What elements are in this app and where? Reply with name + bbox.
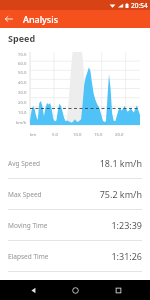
button[interactable]: Home — [65, 280, 85, 300]
staticText: 40.0 — [18, 80, 27, 86]
button[interactable]: Avg Speed — [0, 148, 150, 178]
staticText: 18.1 km/h — [99, 157, 142, 169]
button[interactable]: Recent apps — [108, 280, 128, 300]
button[interactable]: Moving Time — [0, 210, 150, 240]
staticText: Elapsed Time — [8, 252, 49, 261]
staticText: 5.0 — [52, 132, 58, 138]
staticText: 60.0 — [18, 61, 27, 67]
staticText: Max Speed — [8, 190, 42, 199]
button[interactable]: Back — [23, 280, 43, 300]
staticText: 50.0 — [18, 70, 27, 76]
staticText: 30.0 — [18, 90, 27, 96]
staticText: 1:23:39 — [111, 219, 142, 231]
staticText: km/h — [16, 120, 27, 126]
button[interactable]: Back — [0, 10, 18, 28]
staticText: 20.0 — [115, 132, 124, 138]
staticText: 1:31:26 — [111, 250, 142, 262]
staticText: Analysis — [23, 13, 59, 25]
staticText: 20:54 — [131, 1, 148, 10]
staticText: 10.0 — [73, 132, 82, 138]
staticText: 70.0 — [18, 52, 27, 58]
staticText: 75.2 km/h — [99, 188, 142, 200]
staticText: km — [30, 132, 37, 138]
button[interactable]: Max Speed — [0, 179, 150, 209]
button[interactable]: Elapsed Time — [0, 241, 150, 271]
staticText: Moving Time — [8, 221, 48, 230]
staticText: Avg Speed — [8, 159, 41, 168]
staticText: Speed — [8, 32, 36, 44]
staticText: 20.0 — [18, 100, 27, 106]
staticText: 10.0 — [18, 110, 27, 116]
staticText: 15.0 — [94, 132, 103, 138]
